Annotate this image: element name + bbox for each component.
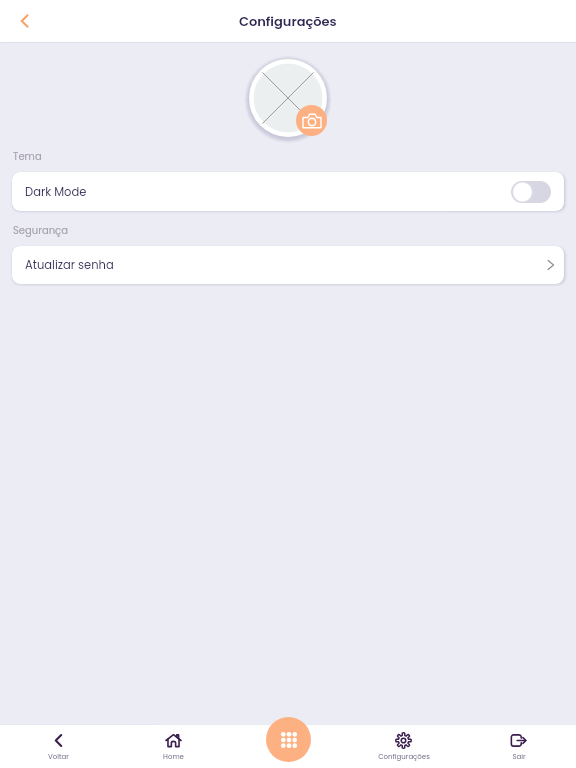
button[interactable]: Voltar xyxy=(10,6,40,36)
button[interactable]: Home xyxy=(116,732,231,762)
button[interactable]: Dark Mode xyxy=(12,172,564,211)
button[interactable]: Alterar foto xyxy=(249,59,327,137)
button[interactable]: Menu xyxy=(266,717,311,762)
staticText: Segurança xyxy=(13,223,68,237)
button[interactable]: Sair xyxy=(461,732,576,762)
staticText: Dark Mode xyxy=(25,184,87,200)
staticText: Atualizar senha xyxy=(25,257,114,273)
staticText: Tema xyxy=(13,149,42,163)
button[interactable]: Atualizar senha xyxy=(12,246,564,284)
staticText: Configurações xyxy=(239,12,337,30)
staticText: Home xyxy=(163,752,184,762)
staticText: Configurações xyxy=(378,752,430,762)
button[interactable]: Dark Mode xyxy=(511,181,551,203)
button[interactable]: Voltar xyxy=(0,732,116,762)
staticText: Voltar xyxy=(48,752,69,762)
staticText: Sair xyxy=(512,752,526,762)
button[interactable]: Configurações xyxy=(346,732,461,762)
button[interactable]: Alterar foto xyxy=(296,105,327,136)
